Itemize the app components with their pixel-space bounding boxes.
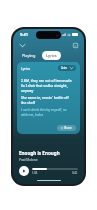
button[interactable]: More options: [71, 41, 79, 49]
button[interactable]: Play: [19, 166, 29, 176]
staticText: 1:08: [32, 171, 38, 175]
staticText: with me, haha: [21, 112, 43, 116]
button[interactable]: Playing: [19, 51, 39, 60]
staticText: I can't drink this by myself, so: [21, 107, 67, 111]
button[interactable]: Collapse: [18, 41, 26, 49]
staticText: Playing: [22, 53, 36, 58]
button[interactable]: Seek: [32, 168, 78, 170]
button[interactable]: Auto: [58, 65, 76, 71]
staticText: She came in, movin' bottle off: [21, 95, 69, 99]
staticText: Enough is Enough: [19, 150, 60, 156]
staticText: 3:42: [72, 171, 78, 175]
button[interactable]: Lyrics: [42, 51, 61, 60]
staticText: Auto: [61, 66, 68, 70]
staticText: Share: [64, 126, 72, 130]
staticText: anyway: [21, 88, 34, 92]
button[interactable]: Share: [57, 125, 76, 131]
staticText: 2 AM, they ran out of lemonade: [21, 78, 72, 82]
staticText: the shelf: [21, 100, 36, 104]
staticText: So I shot that vodka straight,: [21, 83, 68, 87]
staticText: Lyrics: [21, 66, 31, 71]
staticText: 9:41: [20, 32, 28, 37]
staticText: Lyrics: [46, 53, 57, 58]
staticText: Post Malone: [19, 158, 38, 162]
